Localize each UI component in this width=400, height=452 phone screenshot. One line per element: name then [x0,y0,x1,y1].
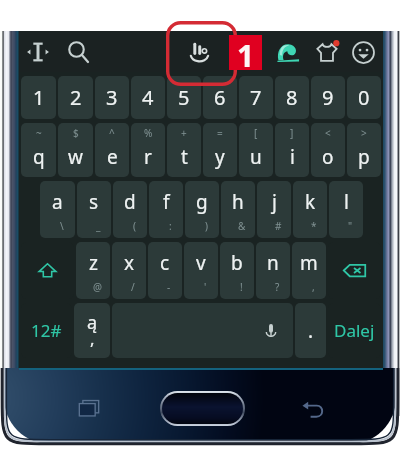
button[interactable]: 2 [58,76,93,119]
button[interactable]: h [221,181,255,238]
button[interactable]: z [76,242,110,299]
button[interactable]: t [167,123,201,177]
staticText: # [275,219,282,233]
staticText: \ [60,219,64,233]
button[interactable]: . [295,303,326,358]
staticText: ) [205,219,208,233]
button[interactable]: f [149,181,183,238]
button[interactable]: 12# [21,303,72,358]
staticText: . [308,318,314,344]
staticText: > [361,126,367,140]
staticText: l [344,189,349,215]
button[interactable]: Back [294,390,332,428]
button[interactable]: 3 [95,76,129,119]
button[interactable]: w [58,123,93,177]
button[interactable]: c [148,242,182,299]
staticText: ( [133,219,136,233]
staticText: % [144,126,153,140]
staticText: [ [254,126,258,140]
button[interactable]: 6 [203,76,237,119]
staticText: g [196,189,208,215]
button[interactable]: m [292,242,326,299]
button[interactable]: Recents [70,389,108,427]
button[interactable]: v [184,242,218,299]
staticText: + [181,126,187,140]
staticText: a [52,189,63,215]
button[interactable]: Voice assistant [271,35,305,69]
staticText: 3 [106,84,118,111]
staticText: t [181,144,188,170]
button[interactable]: Backspace [328,242,381,299]
button[interactable]: l [329,181,363,238]
staticText: , [90,327,95,350]
button[interactable]: 4 [131,76,165,119]
staticText: s [89,189,99,215]
button[interactable]: Text selection [21,35,55,69]
staticText: c [160,250,170,276]
staticText: 6 [214,84,226,111]
button[interactable]: Handwriting [183,35,217,69]
staticText: d [124,189,136,215]
staticText: / [131,280,135,294]
button[interactable]: Emoji [346,35,380,69]
staticText: * [311,219,317,233]
button[interactable]: q [21,123,56,177]
button[interactable]: r [131,123,165,177]
staticText: & [238,219,246,233]
button[interactable]: Dalej [328,303,381,358]
staticText: _ [96,219,101,233]
button[interactable]: a [40,181,75,238]
staticText: e [107,144,118,170]
staticText: 9 [322,84,334,111]
button[interactable]: k [293,181,327,238]
button[interactable]: i [275,123,309,177]
button[interactable]: u [239,123,273,177]
button[interactable]: 5 [167,76,201,119]
button[interactable]: 8 [275,76,309,119]
button[interactable]: 0 [347,76,381,119]
staticText: 1 [33,84,45,111]
button[interactable]: y [203,123,237,177]
staticText: z [89,250,98,276]
button[interactable]: Shift [21,242,74,299]
button[interactable]: Space [112,303,293,358]
staticText: q [33,144,45,170]
button[interactable]: s [77,181,111,238]
button[interactable]: ą [74,303,110,358]
staticText: 4 [142,84,154,111]
staticText: n [267,250,279,276]
button[interactable]: g [185,181,219,238]
staticText: - [167,280,171,294]
button[interactable]: p [347,123,381,177]
button[interactable]: b [220,242,254,299]
staticText: 1 [237,35,255,70]
staticText: 8 [286,84,298,111]
staticText: < [325,126,331,140]
staticText: 12# [31,319,62,342]
staticText: m [300,250,318,276]
button[interactable]: 1 [21,76,56,119]
staticText: " [348,219,353,233]
button[interactable]: 7 [239,76,273,119]
button[interactable]: o [311,123,345,177]
staticText: , [312,280,315,294]
button[interactable]: x [112,242,146,299]
button[interactable]: e [95,123,129,177]
staticText: p [358,144,370,170]
button[interactable]: d [113,181,147,238]
staticText: = [217,126,223,140]
staticText: 5 [178,84,190,111]
button[interactable]: Home [162,393,243,424]
button[interactable]: j [257,181,291,238]
button[interactable]: 9 [311,76,345,119]
button[interactable]: Search [61,35,95,69]
staticText: f [163,189,170,215]
button[interactable]: n [256,242,290,299]
staticText: u [250,144,262,170]
staticText: v [196,250,206,276]
staticText: x [124,250,135,276]
button[interactable]: Keyboard theme [310,35,344,69]
staticText: 2 [70,84,82,111]
staticText: o [322,144,334,170]
staticText: w [68,144,83,170]
